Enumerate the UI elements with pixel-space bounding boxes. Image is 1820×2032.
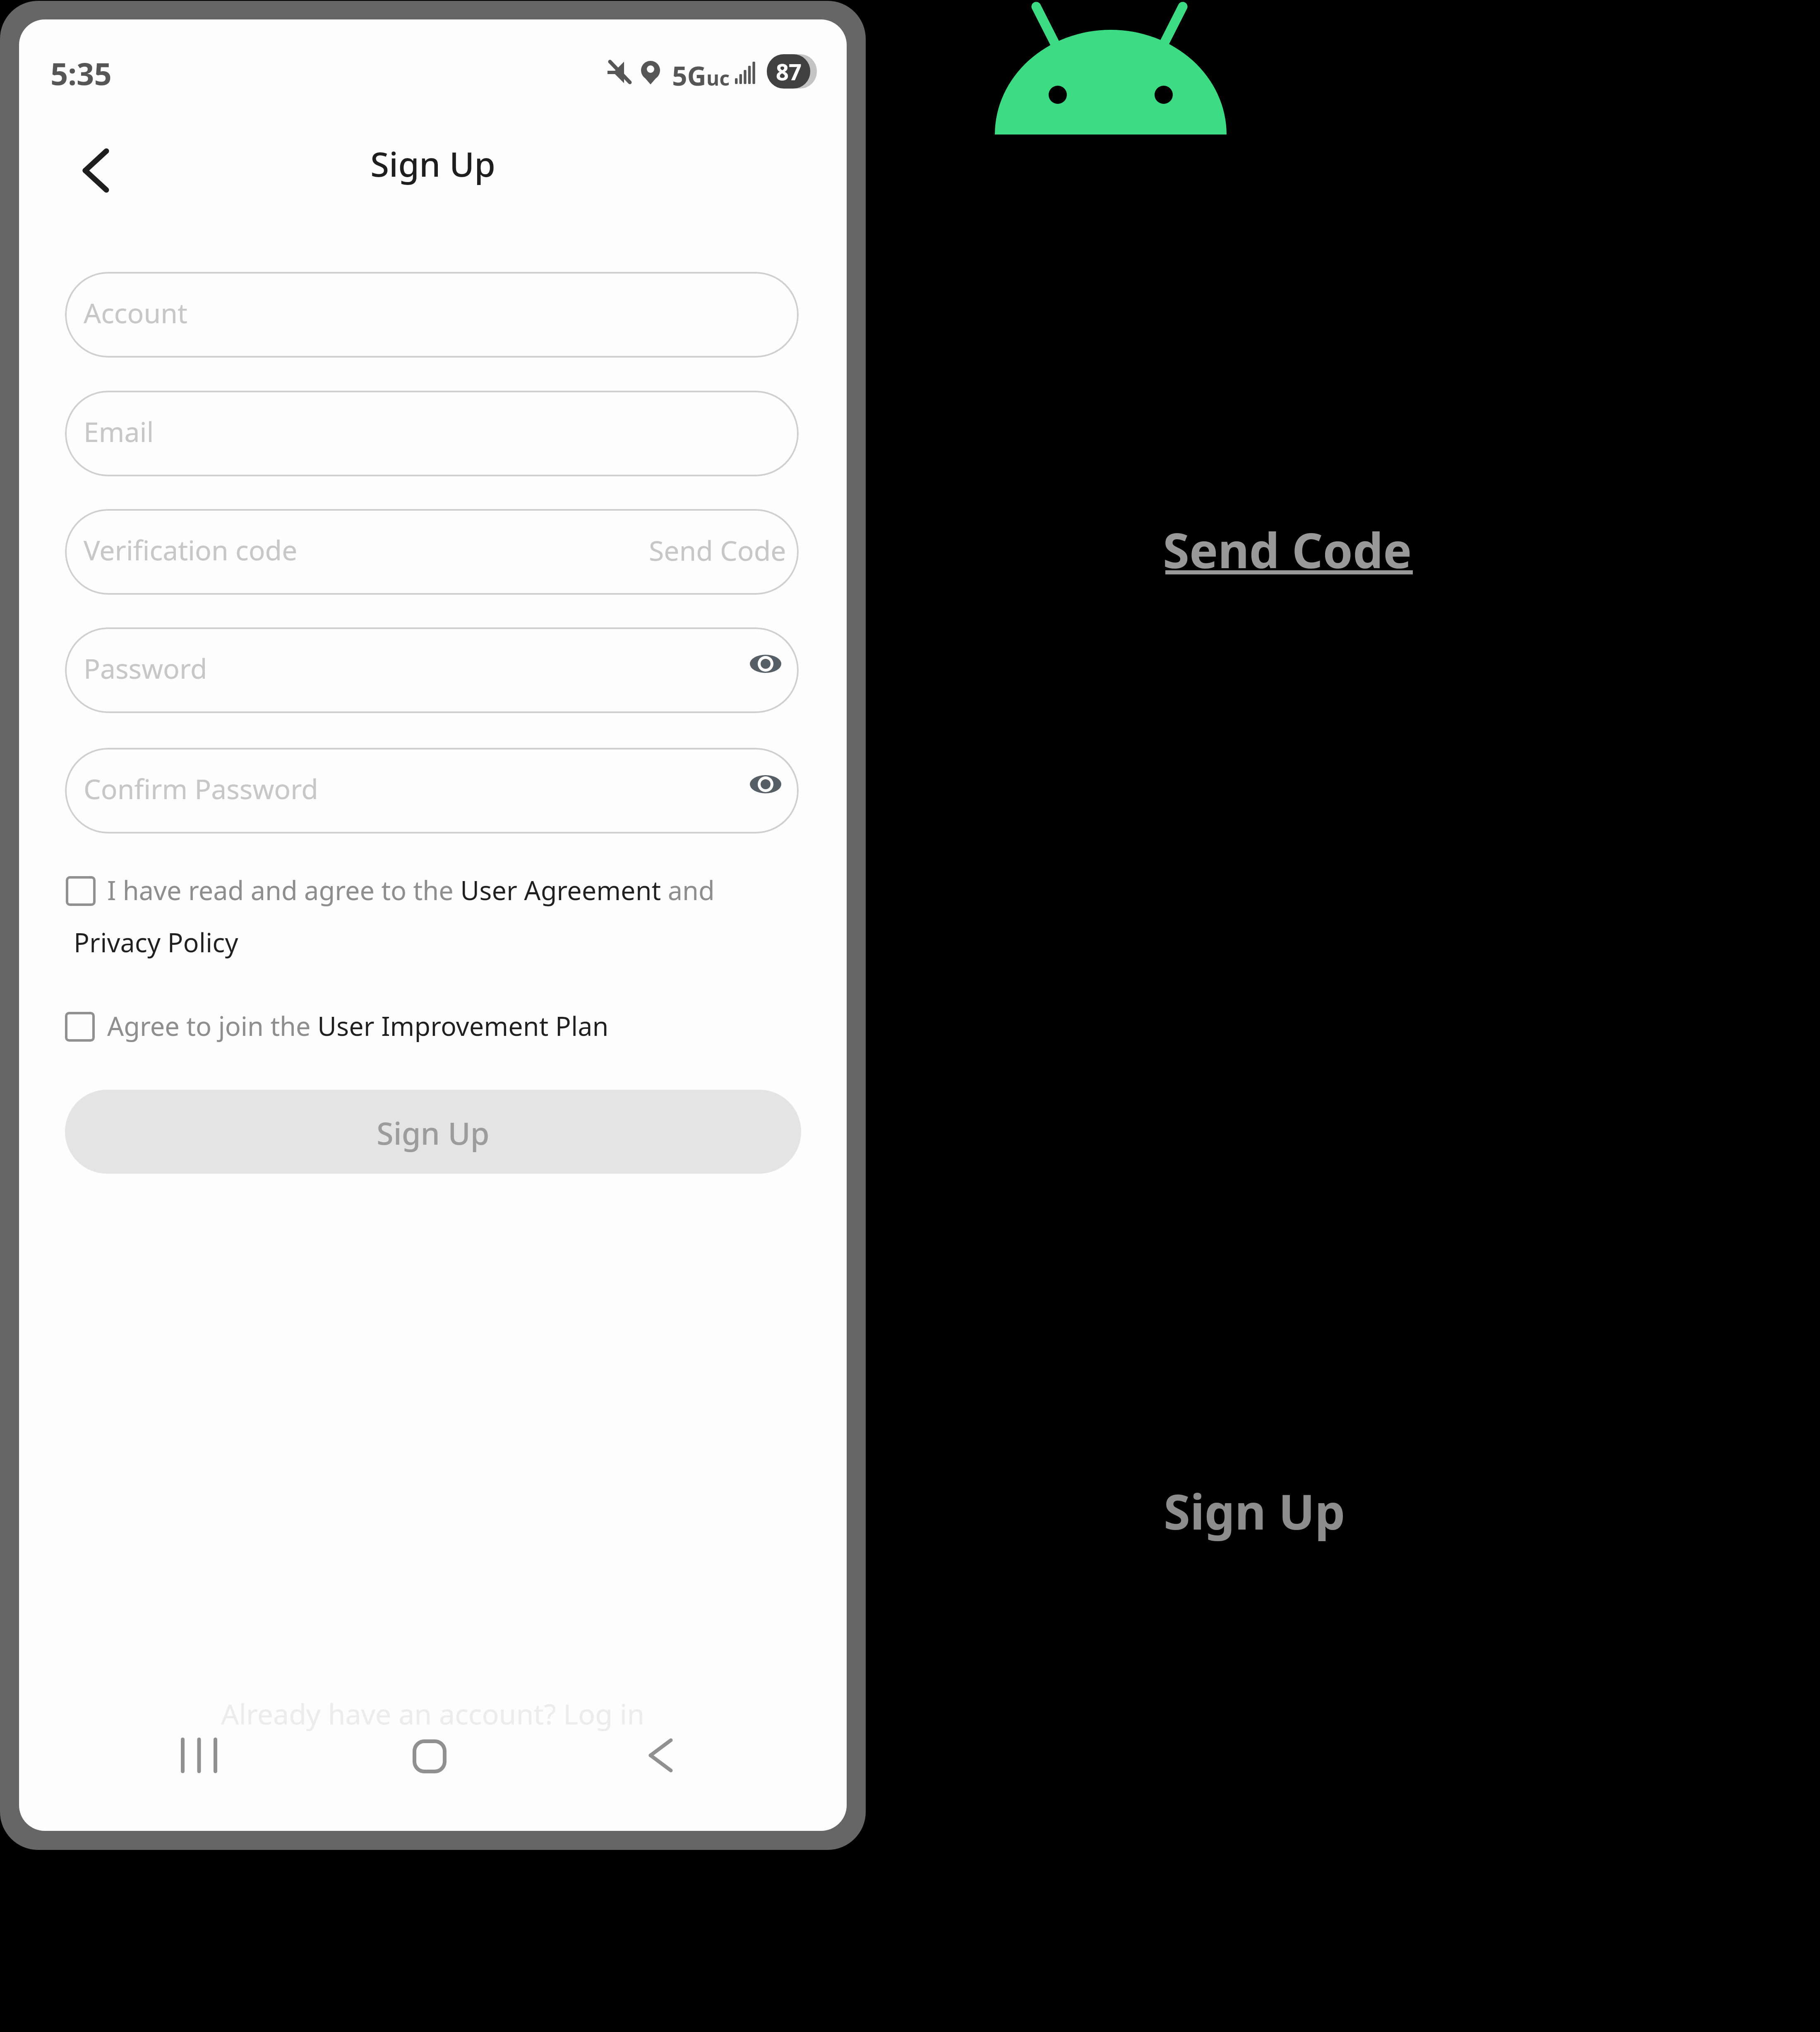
button[interactable] xyxy=(156,1725,234,1787)
button[interactable] xyxy=(73,139,118,202)
button[interactable] xyxy=(65,391,799,476)
button[interactable] xyxy=(65,1012,95,1042)
staticText: Account xyxy=(84,294,187,331)
staticText: Sign Up xyxy=(370,140,496,187)
staticText: Email xyxy=(84,413,154,450)
button[interactable] xyxy=(65,748,799,833)
staticText: 5:35 xyxy=(50,53,112,94)
button[interactable] xyxy=(623,1725,702,1787)
staticText: Confirm Password xyxy=(84,770,318,807)
staticText: Already have an account? Log in xyxy=(221,1694,645,1733)
button[interactable] xyxy=(65,509,799,595)
button[interactable] xyxy=(391,1725,470,1787)
button[interactable]: Already have an account? Log in xyxy=(19,1694,847,1736)
button[interactable] xyxy=(65,1090,801,1174)
staticText: 87 xyxy=(776,56,802,87)
staticText: Verification code xyxy=(84,531,298,568)
button[interactable]: Send Code xyxy=(619,520,799,582)
button[interactable]: I have read and agree to the User Agreem… xyxy=(107,872,715,908)
button[interactable]: Sign Up xyxy=(1164,1478,1345,1544)
staticText: 5Guc xyxy=(672,58,730,94)
staticText: Sign Up xyxy=(377,1112,490,1154)
staticText: Password xyxy=(84,649,207,687)
staticText: Send Code xyxy=(1163,517,1412,582)
button[interactable]: Send Code xyxy=(1163,513,1419,579)
button[interactable] xyxy=(65,272,799,358)
button[interactable] xyxy=(66,876,96,906)
button[interactable]: Agree to join the User Improvement Plan xyxy=(107,1008,609,1044)
button[interactable] xyxy=(65,627,799,713)
staticText: Send Code xyxy=(649,531,786,569)
button[interactable]: Privacy Policy xyxy=(74,925,238,960)
